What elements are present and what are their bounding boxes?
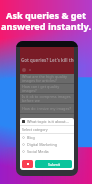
staticText: How can i get quality images? [22, 84, 72, 93]
staticText: What are the high quality images for art… [22, 74, 72, 83]
staticText: Digital Marketing [27, 142, 57, 147]
button[interactable]: Submit [35, 160, 72, 168]
button[interactable]: What topic is it about... [22, 118, 72, 125]
staticText: Submit [48, 162, 60, 167]
staticText: Social Media [27, 149, 49, 154]
staticText: How do i resize my images? [22, 106, 72, 111]
staticText: Blog [27, 135, 35, 140]
staticText: Select category [22, 127, 48, 132]
button[interactable]: Social Media [22, 148, 74, 155]
button[interactable]: Digital Marketing [22, 141, 74, 148]
staticText: Is it ok to compress images before we lo… [22, 94, 72, 103]
staticText: Got queries? Let's kill the curiosity [21, 57, 74, 63]
button[interactable]: Blog [22, 134, 74, 141]
staticText: Ask queries & get answered instantly. [1, 9, 91, 32]
staticText: What topic is it about... [27, 119, 69, 124]
button[interactable]: Close [22, 160, 33, 168]
